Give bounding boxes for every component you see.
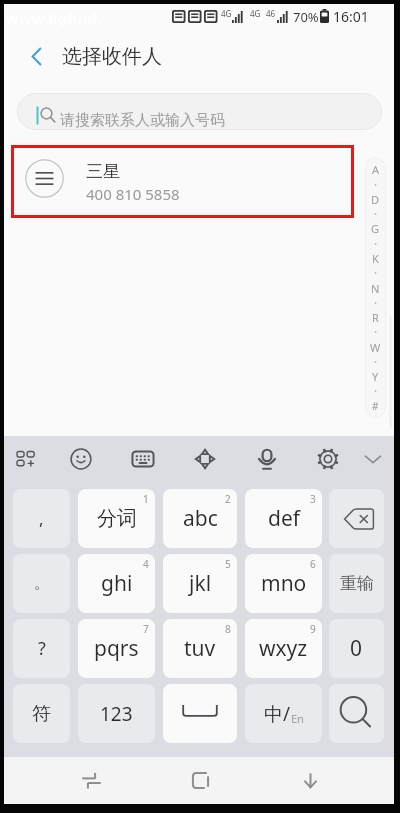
- staticText: A: [372, 162, 380, 177]
- staticText: 2: [225, 492, 231, 506]
- staticText: 400 810 5858: [86, 184, 180, 204]
- button[interactable]: tuv: [163, 619, 237, 678]
- staticText: pqrs: [94, 634, 139, 663]
- button[interactable]: 中/: [245, 684, 322, 743]
- staticText: jkl: [189, 569, 212, 598]
- button[interactable]: 。: [13, 554, 70, 613]
- button[interactable]: 三星: [11, 145, 354, 218]
- staticText: 。: [34, 574, 49, 593]
- button[interactable]: Recents: [61, 758, 121, 803]
- button[interactable]: def: [245, 489, 322, 548]
- staticText: 8: [225, 622, 231, 636]
- staticText: R: [372, 310, 379, 325]
- button[interactable]: 请搜索联系人或输入号码: [17, 93, 382, 130]
- button[interactable]: Hide keyboard: [351, 436, 395, 482]
- staticText: 4G: [250, 8, 261, 19]
- button[interactable]: 重输: [329, 554, 384, 613]
- button[interactable]: 0: [329, 619, 384, 678]
- staticText: mno: [261, 569, 307, 598]
- button[interactable]: abc: [163, 489, 237, 548]
- staticText: 三星: [86, 161, 120, 182]
- staticText: 4G: [221, 8, 232, 19]
- button[interactable]: 123: [78, 684, 155, 743]
- staticText: G: [371, 221, 380, 236]
- button[interactable]: Hide keyboard: [280, 758, 340, 803]
- button[interactable]: Voice input: [245, 436, 289, 482]
- button[interactable]: Back: [16, 36, 56, 76]
- button[interactable]: Keyboard layout: [121, 436, 165, 482]
- button[interactable]: Search: [329, 684, 384, 743]
- button[interactable]: Home: [170, 758, 230, 803]
- button[interactable]: ghi: [78, 554, 155, 613]
- staticText: tuv: [184, 634, 216, 663]
- staticText: En: [291, 711, 304, 726]
- staticText: W: [370, 340, 381, 355]
- staticText: 9: [310, 622, 316, 636]
- button[interactable]: Settings: [306, 436, 350, 482]
- button[interactable]: Space: [163, 684, 237, 743]
- staticText: ,: [39, 507, 44, 530]
- staticText: ghi: [101, 569, 133, 598]
- button[interactable]: Emoji: [59, 436, 103, 482]
- staticText: #: [372, 399, 379, 413]
- staticText: 请搜索联系人或输入号码: [60, 111, 225, 130]
- staticText: N: [371, 281, 380, 296]
- staticText: 4: [143, 557, 149, 571]
- button[interactable]: pqrs: [78, 619, 155, 678]
- staticText: 46: [266, 8, 276, 19]
- staticText: 符: [32, 702, 51, 726]
- staticText: 70%: [293, 8, 319, 26]
- button[interactable]: Alphabet index: [365, 157, 386, 418]
- button[interactable]: ?: [13, 619, 70, 678]
- staticText: 6: [310, 557, 316, 571]
- staticText: 中/: [264, 701, 291, 727]
- staticText: 选择收件人: [62, 44, 162, 69]
- button[interactable]: 符: [13, 684, 70, 743]
- staticText: 0: [350, 634, 363, 663]
- button[interactable]: mno: [245, 554, 322, 613]
- staticText: 重输: [340, 573, 374, 594]
- staticText: D: [371, 192, 380, 207]
- staticText: 1: [143, 492, 149, 506]
- staticText: 16:01: [333, 7, 369, 26]
- button[interactable]: ,: [13, 489, 70, 548]
- staticText: abc: [183, 504, 218, 533]
- staticText: def: [268, 504, 300, 533]
- staticText: ?: [38, 636, 46, 661]
- button[interactable]: Apps: [6, 436, 50, 482]
- staticText: 分词: [97, 506, 137, 531]
- button[interactable]: jkl: [163, 554, 237, 613]
- button[interactable]: Move cursor: [183, 436, 227, 482]
- staticText: wxyz: [259, 634, 308, 663]
- button[interactable]: 分词: [78, 489, 155, 548]
- staticText: 123: [100, 701, 133, 727]
- staticText: K: [372, 251, 379, 266]
- button[interactable]: wxyz: [245, 619, 322, 678]
- staticText: 5: [225, 557, 231, 571]
- staticText: Y: [372, 369, 379, 384]
- button[interactable]: Backspace: [329, 489, 384, 548]
- staticText: 3: [310, 492, 316, 506]
- staticText: 7: [143, 622, 149, 636]
